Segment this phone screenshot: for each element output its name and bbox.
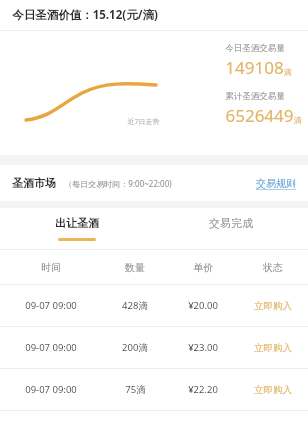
staticText: 6526449	[225, 104, 294, 127]
button[interactable]: 立即购入	[237, 327, 308, 368]
staticText: 圣酒市场	[12, 176, 56, 190]
staticText: ¥20.00	[188, 299, 218, 312]
staticText: 立即购入	[254, 384, 292, 396]
staticText: （每日交易时间：9:00~22:00)	[64, 178, 172, 189]
staticText: 今日圣酒交易量	[225, 43, 285, 54]
button[interactable]: 立即购入	[237, 369, 308, 410]
staticText: ¥23.00	[188, 341, 218, 354]
staticText: 428滴	[122, 299, 148, 312]
staticText: 状态	[263, 261, 283, 274]
staticText: 75滴	[125, 383, 146, 396]
button[interactable]: 交易完成	[154, 208, 308, 249]
staticText: 149108	[225, 56, 284, 79]
staticText: 近7日走势	[127, 117, 160, 127]
staticText: 09-07 09:00	[25, 383, 77, 396]
staticText: 数量	[125, 261, 145, 274]
staticText: 交易规则	[256, 177, 296, 190]
button[interactable]: 出让圣酒	[0, 208, 154, 249]
staticText: 滴	[284, 67, 292, 77]
button[interactable]: 立即购入	[237, 285, 308, 326]
staticText: 滴	[294, 115, 302, 125]
staticText: 出让圣酒	[55, 216, 99, 230]
staticText: 立即购入	[254, 300, 292, 312]
staticText: 09-07 09:00	[25, 341, 77, 354]
staticText: ¥22.20	[188, 383, 218, 396]
staticText: 09-07 09:00	[25, 299, 77, 312]
staticText: 今日圣酒价值：15.12(元/滴)	[12, 7, 158, 23]
staticText: 200滴	[122, 341, 148, 354]
staticText: 交易完成	[209, 216, 253, 230]
staticText: 单价	[193, 261, 213, 274]
staticText: 立即购入	[254, 342, 292, 354]
staticText: 累计圣酒交易量	[225, 91, 285, 102]
button[interactable]: 交易规则	[256, 177, 296, 190]
staticText: 时间	[41, 261, 61, 274]
